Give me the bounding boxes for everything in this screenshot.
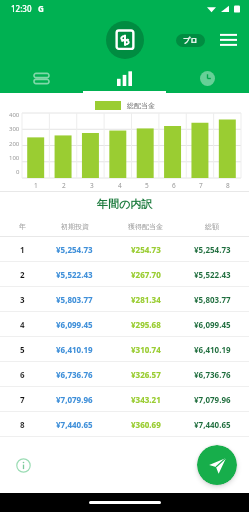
staticText: ¥281.34 — [131, 294, 161, 305]
button[interactable]: List — [0, 63, 83, 93]
button[interactable]: Info — [12, 454, 34, 476]
button[interactable]: 2 — [0, 262, 249, 286]
button[interactable]: 3 — [0, 287, 249, 311]
staticText: 0 — [16, 168, 20, 176]
staticText: ¥6,736.76 — [194, 369, 231, 380]
staticText: ¥5,803.77 — [194, 294, 231, 305]
staticText: ¥6,736.76 — [56, 369, 93, 380]
staticText: ¥360.69 — [131, 419, 161, 430]
staticText: 5 — [145, 181, 149, 190]
staticText: 400 — [9, 111, 20, 119]
staticText: ¥254.73 — [131, 244, 161, 255]
staticText: ¥7,440.65 — [194, 419, 231, 430]
staticText: 7 — [199, 181, 203, 190]
staticText: 4 — [118, 181, 122, 190]
staticText: 6 — [172, 181, 176, 190]
staticText: ¥7,079.96 — [194, 394, 231, 405]
staticText: ¥5,254.73 — [56, 244, 93, 255]
staticText: ¥7,079.96 — [56, 394, 93, 405]
staticText: ¥310.74 — [131, 344, 161, 355]
staticText: 5 — [20, 344, 25, 355]
staticText: 12:30 — [11, 3, 32, 14]
staticText: ¥343.21 — [131, 394, 161, 405]
staticText: 4 — [20, 319, 25, 330]
staticText: ¥295.68 — [131, 319, 161, 330]
button[interactable]: Send — [197, 445, 237, 485]
staticText: 3 — [90, 181, 94, 190]
staticText: ¥267.70 — [131, 269, 161, 280]
staticText: 2 — [20, 269, 25, 280]
staticText: 初期投資 — [61, 222, 89, 231]
staticText: ¥5,522.43 — [194, 269, 231, 280]
button[interactable]: 5 — [0, 337, 249, 361]
staticText: 年 — [19, 222, 26, 231]
staticText: 獲得配当金 — [128, 222, 163, 231]
staticText: ¥5,522.43 — [56, 269, 93, 280]
staticText: 1 — [20, 244, 25, 255]
staticText: 年間の内訳 — [97, 197, 153, 211]
staticText: 総額 — [205, 222, 219, 231]
button[interactable]: History — [166, 63, 249, 93]
button[interactable]: プロ — [176, 34, 205, 47]
staticText: ¥5,254.73 — [194, 244, 231, 255]
button[interactable]: 7 — [0, 387, 249, 411]
button[interactable]: Logo — [106, 21, 144, 59]
staticText: 300 — [9, 125, 20, 133]
button[interactable]: 4 — [0, 312, 249, 336]
staticText: 1 — [34, 181, 38, 190]
staticText: ¥7,440.65 — [56, 419, 93, 430]
staticText: ¥6,410.19 — [56, 344, 93, 355]
button[interactable]: 6 — [0, 362, 249, 386]
button[interactable]: 8 — [0, 412, 249, 436]
staticText: 100 — [9, 154, 20, 162]
button[interactable]: Menu — [215, 27, 241, 53]
staticText: 8 — [20, 419, 25, 430]
staticText: ¥6,410.19 — [194, 344, 231, 355]
staticText: ¥326.57 — [131, 369, 161, 380]
button[interactable]: Chart — [83, 63, 166, 93]
staticText: G — [38, 3, 44, 14]
staticText: 7 — [20, 394, 25, 405]
staticText: 200 — [9, 140, 20, 148]
staticText: 3 — [20, 294, 25, 305]
staticText: 8 — [226, 181, 230, 190]
staticText: ¥6,099.45 — [194, 319, 231, 330]
staticText: プロ — [183, 36, 198, 45]
staticText: ¥6,099.45 — [56, 319, 93, 330]
staticText: 総配当金 — [127, 101, 155, 110]
staticText: 2 — [62, 181, 66, 190]
button[interactable]: 1 — [0, 237, 249, 261]
staticText: ¥5,803.77 — [56, 294, 93, 305]
staticText: 6 — [20, 369, 25, 380]
